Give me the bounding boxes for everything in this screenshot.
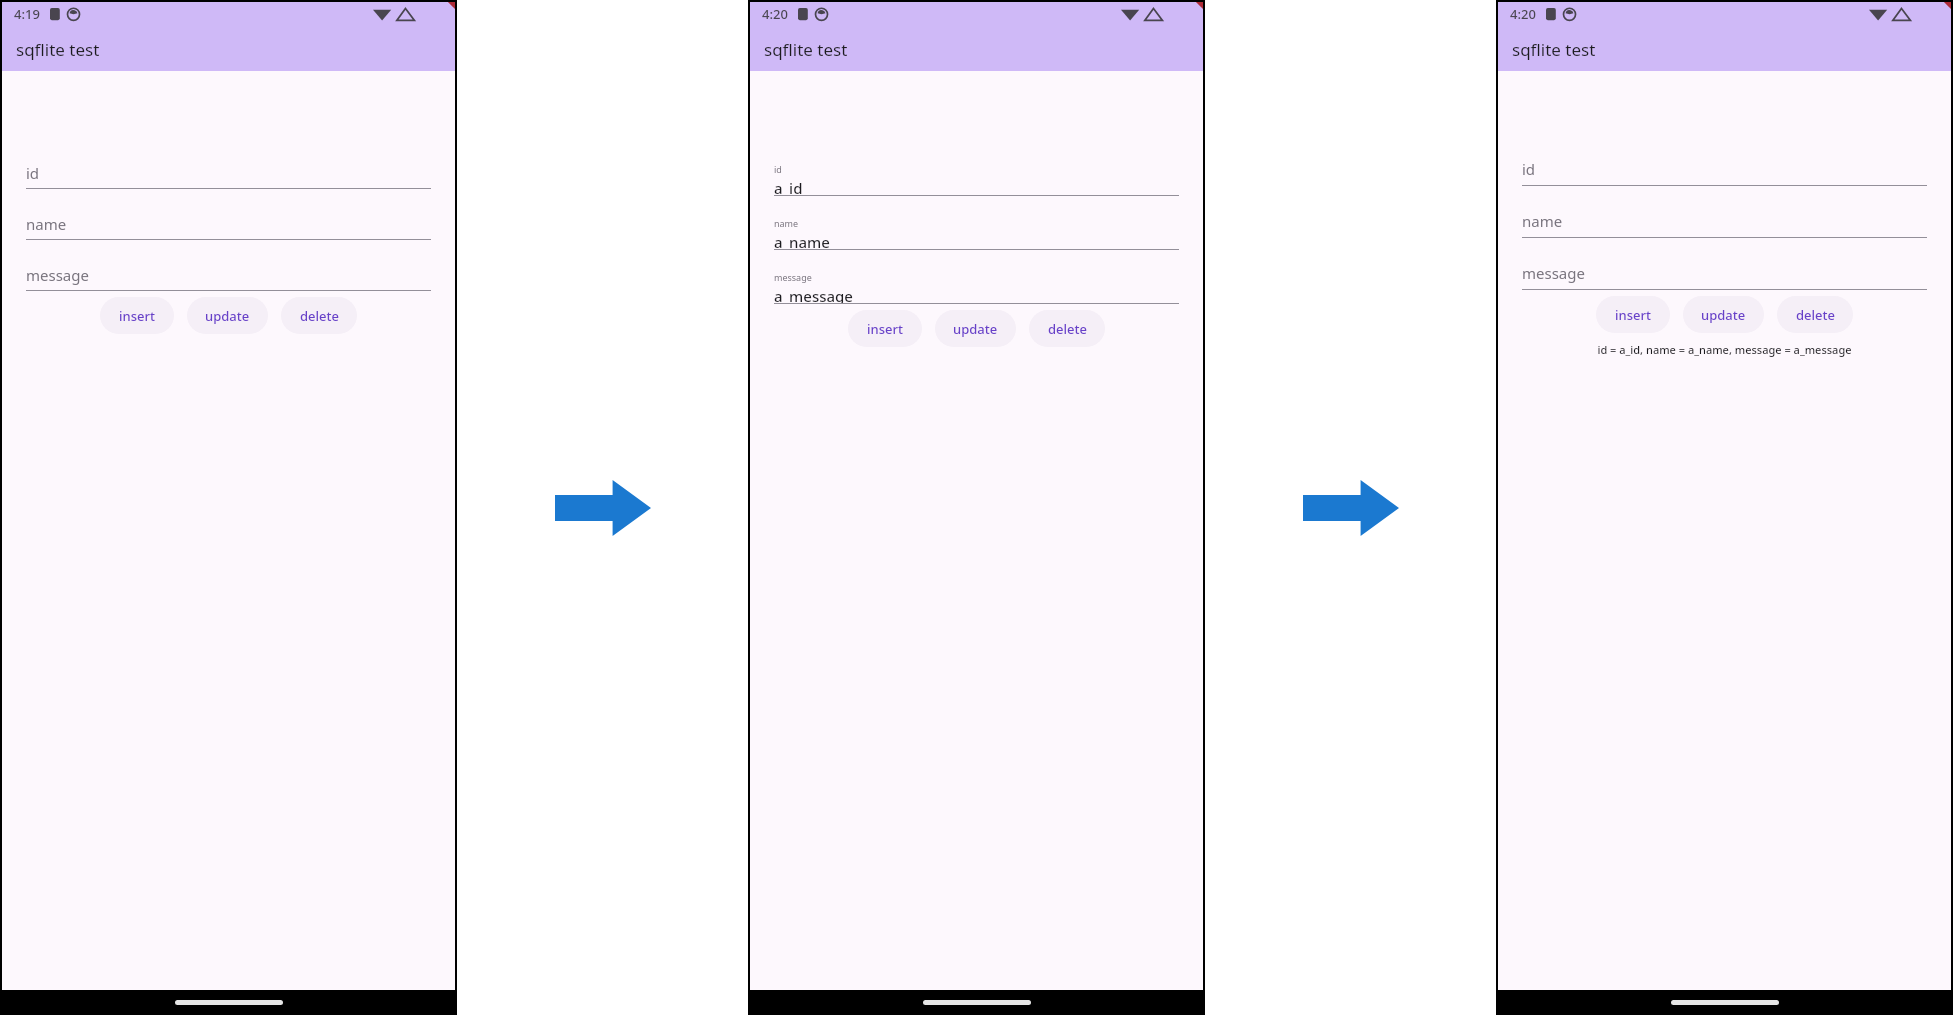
button[interactable]: update bbox=[187, 297, 268, 334]
button[interactable]: id bbox=[1522, 155, 1927, 186]
staticText: delete bbox=[300, 307, 339, 325]
other: Debug banner bbox=[1147, 0, 1205, 58]
other: Next step bbox=[1303, 480, 1399, 536]
staticText: name bbox=[26, 214, 67, 234]
button[interactable]: delete bbox=[281, 297, 357, 334]
staticText: a_name bbox=[774, 232, 830, 250]
staticText: 4:19 bbox=[14, 5, 40, 23]
staticText: id bbox=[1522, 159, 1536, 179]
staticText: message bbox=[26, 265, 89, 285]
button[interactable]: update bbox=[1683, 296, 1764, 333]
button[interactable]: name bbox=[1522, 207, 1927, 238]
button[interactable]: delete bbox=[1029, 310, 1105, 347]
staticText: update bbox=[1701, 306, 1746, 324]
staticText: delete bbox=[1048, 320, 1087, 338]
other: Next step bbox=[555, 480, 651, 536]
staticText: 4:20 bbox=[762, 5, 788, 23]
button[interactable]: insert bbox=[100, 297, 174, 334]
staticText: 4:20 bbox=[1510, 5, 1536, 23]
button[interactable]: update bbox=[935, 310, 1016, 347]
other: Debug banner bbox=[1895, 0, 1953, 58]
staticText: message bbox=[774, 271, 812, 283]
staticText: insert bbox=[1615, 306, 1651, 324]
staticText: name bbox=[1522, 211, 1563, 231]
staticText: id = a_id, name = a_name, message = a_me… bbox=[1522, 342, 1927, 357]
button[interactable]: id bbox=[774, 163, 1179, 196]
button[interactable]: id bbox=[26, 159, 431, 189]
button[interactable]: insert bbox=[1596, 296, 1670, 333]
staticText: insert bbox=[867, 320, 903, 338]
staticText: message bbox=[1522, 263, 1585, 283]
staticText: update bbox=[205, 307, 250, 325]
staticText: delete bbox=[1796, 306, 1835, 324]
button[interactable]: message bbox=[26, 261, 431, 291]
staticText: id bbox=[26, 163, 40, 183]
staticText: sqflite test bbox=[1512, 38, 1596, 61]
staticText: a_message bbox=[774, 286, 853, 304]
staticText: update bbox=[953, 320, 998, 338]
other: Debug banner bbox=[399, 0, 457, 58]
button[interactable]: insert bbox=[848, 310, 922, 347]
button[interactable]: name bbox=[774, 217, 1179, 250]
staticText: name bbox=[774, 217, 799, 229]
staticText: insert bbox=[119, 307, 155, 325]
staticText: a_id bbox=[774, 178, 803, 196]
staticText: id bbox=[774, 163, 782, 175]
button[interactable]: delete bbox=[1777, 296, 1853, 333]
button[interactable]: name bbox=[26, 210, 431, 240]
button[interactable]: message bbox=[1522, 259, 1927, 290]
staticText: sqflite test bbox=[764, 38, 848, 61]
button[interactable]: message bbox=[774, 271, 1179, 304]
staticText: sqflite test bbox=[16, 38, 100, 61]
